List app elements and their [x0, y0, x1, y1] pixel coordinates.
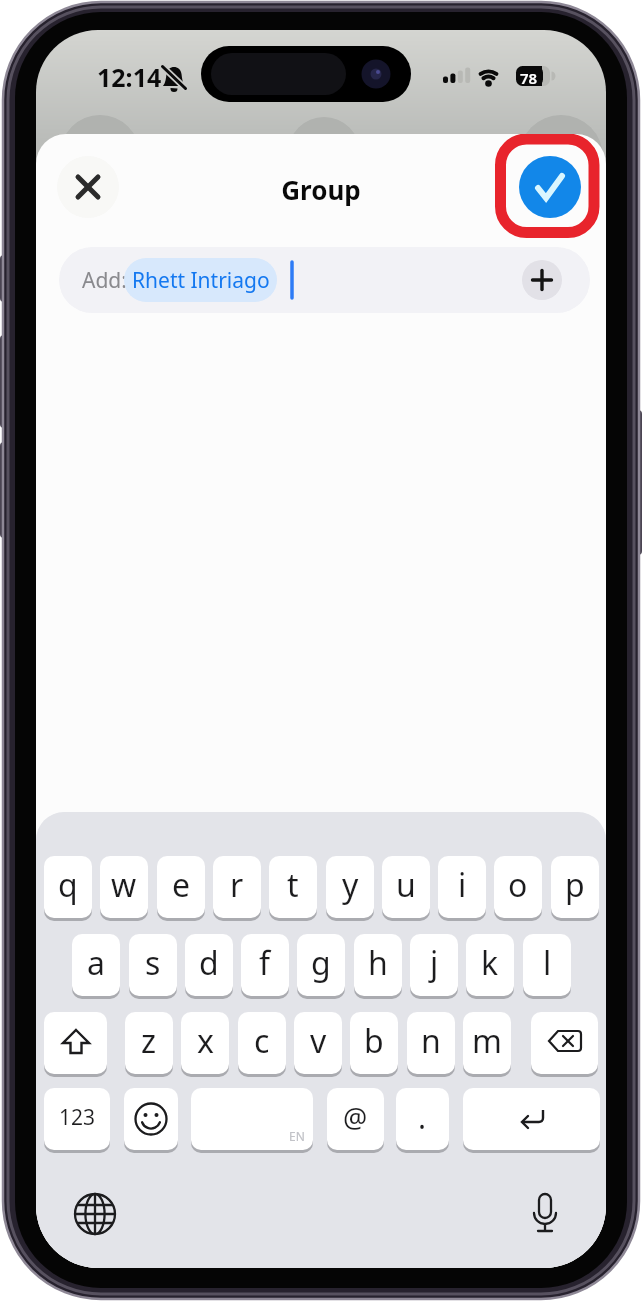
- button[interactable]: b: [350, 1012, 398, 1074]
- staticText: z: [141, 1019, 157, 1063]
- button[interactable]: v: [294, 1012, 342, 1074]
- button[interactable]: c: [238, 1012, 286, 1074]
- staticText: y: [342, 863, 359, 907]
- button[interactable]: n: [407, 1012, 455, 1074]
- button[interactable]: x: [181, 1012, 229, 1074]
- staticText: g: [311, 941, 331, 985]
- staticText: @: [343, 1099, 368, 1136]
- button[interactable]: p: [551, 856, 599, 918]
- staticText: r: [230, 863, 244, 907]
- button[interactable]: g: [297, 934, 345, 996]
- button[interactable]: h: [354, 934, 402, 996]
- button[interactable]: Rhett Intriago: [124, 258, 277, 302]
- button[interactable]: a: [72, 934, 120, 996]
- button[interactable]: [44, 1012, 107, 1074]
- staticText: Add:: [82, 266, 127, 295]
- staticText: b: [364, 1019, 384, 1063]
- button[interactable]: [522, 260, 562, 300]
- staticText: l: [543, 941, 552, 985]
- button[interactable]: d: [185, 934, 233, 996]
- staticText: j: [430, 941, 439, 985]
- staticText: s: [145, 941, 161, 985]
- staticText: d: [199, 941, 219, 985]
- staticText: Rhett Intriago: [132, 266, 270, 295]
- button[interactable]: [531, 1012, 598, 1074]
- staticText: u: [396, 863, 416, 907]
- button[interactable]: w: [100, 856, 148, 918]
- staticText: 123: [59, 1103, 96, 1132]
- staticText: c: [254, 1019, 270, 1063]
- button[interactable]: [57, 156, 119, 218]
- staticText: 78: [520, 68, 538, 88]
- staticText: EN: [289, 1128, 305, 1144]
- staticText: m: [472, 1019, 502, 1063]
- button[interactable]: @: [327, 1088, 384, 1150]
- staticText: f: [259, 941, 271, 985]
- button[interactable]: m: [463, 1012, 511, 1074]
- staticText: .: [418, 1097, 427, 1138]
- button[interactable]: [463, 1088, 600, 1150]
- staticText: p: [565, 863, 585, 907]
- staticText: o: [508, 863, 528, 907]
- staticText: w: [111, 863, 137, 907]
- staticText: a: [87, 941, 105, 985]
- staticText: q: [58, 863, 78, 907]
- button[interactable]: o: [494, 856, 542, 918]
- staticText: h: [368, 941, 388, 985]
- button[interactable]: r: [213, 856, 261, 918]
- button[interactable]: k: [466, 934, 514, 996]
- staticText: t: [287, 863, 299, 907]
- button[interactable]: j: [410, 934, 458, 996]
- button[interactable]: 123: [44, 1088, 110, 1150]
- staticText: k: [481, 941, 499, 985]
- button[interactable]: .: [396, 1088, 449, 1150]
- button[interactable]: q: [44, 856, 92, 918]
- staticText: x: [197, 1019, 214, 1063]
- button[interactable]: s: [129, 934, 177, 996]
- staticText: e: [172, 863, 191, 907]
- staticText: v: [310, 1019, 327, 1063]
- button[interactable]: t: [269, 856, 317, 918]
- button[interactable]: e: [157, 856, 205, 918]
- button[interactable]: f: [241, 934, 289, 996]
- button[interactable]: [124, 1088, 178, 1150]
- button[interactable]: [519, 156, 581, 218]
- button[interactable]: u: [382, 856, 430, 918]
- staticText: i: [458, 863, 467, 907]
- staticText: n: [421, 1019, 441, 1063]
- staticText: Group: [36, 172, 606, 206]
- button[interactable]: i: [438, 856, 486, 918]
- staticText: 12:14: [97, 60, 162, 94]
- button[interactable]: y: [326, 856, 374, 918]
- button[interactable]: z: [125, 1012, 173, 1074]
- button[interactable]: EN: [191, 1088, 313, 1150]
- button[interactable]: l: [523, 934, 571, 996]
